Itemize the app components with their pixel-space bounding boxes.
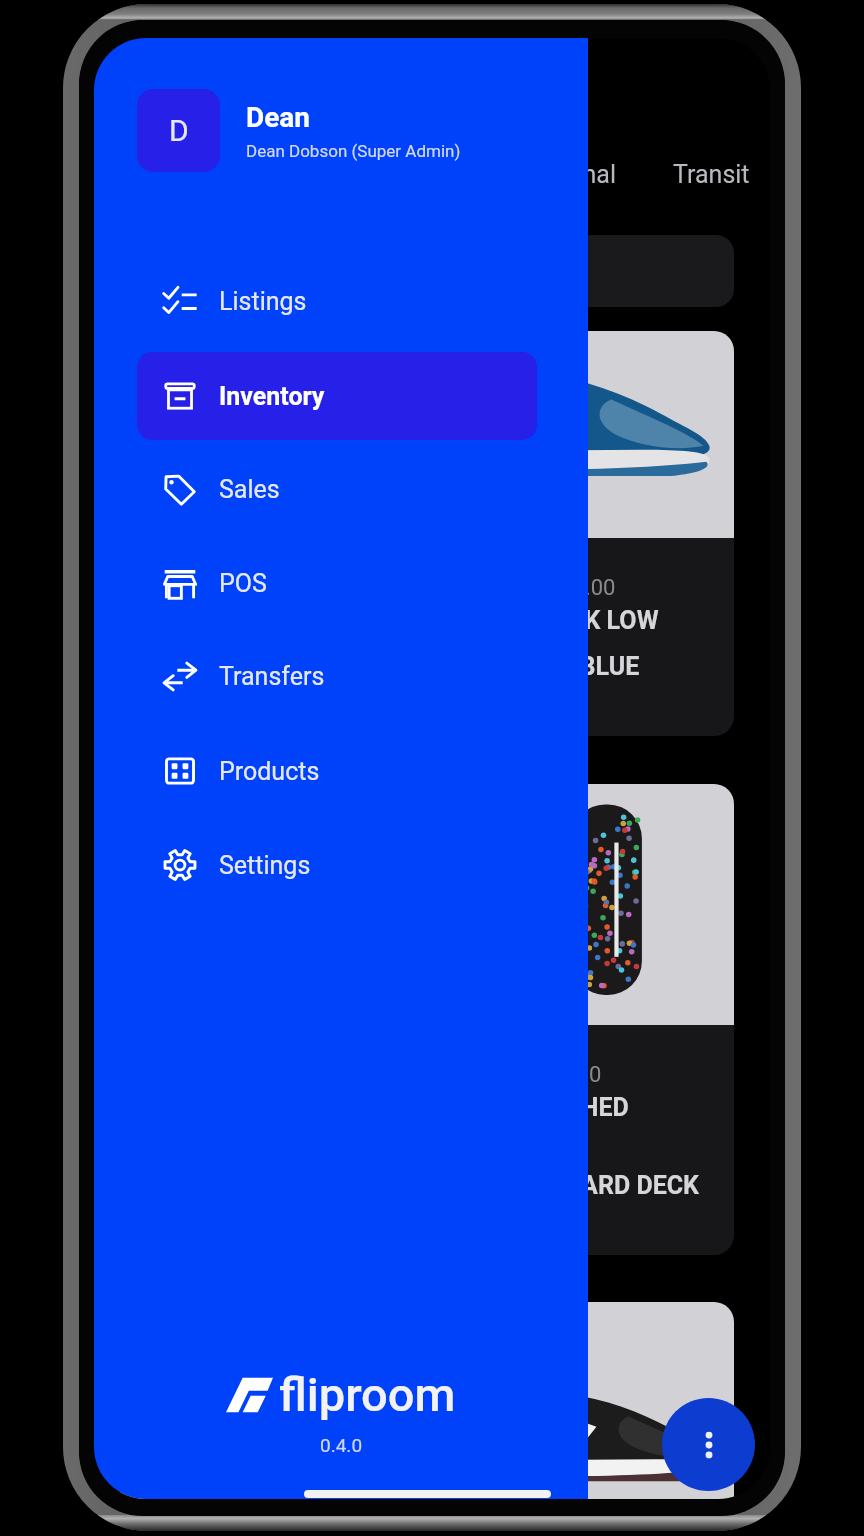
staticText: D	[169, 113, 189, 148]
button[interactable]: POS	[137, 539, 537, 627]
staticText: Dean	[246, 101, 311, 134]
staticText: fliproom	[279, 1367, 456, 1422]
staticText: Inventory	[219, 382, 325, 411]
button[interactable]: Settings	[137, 821, 537, 909]
staticText: Transit	[673, 160, 750, 189]
staticText: 0.4.0	[320, 1434, 363, 1456]
staticText: Dean Dobson (Super Admin)	[246, 141, 461, 161]
staticText: NIKE DUNK LOW	[473, 606, 659, 634]
button[interactable]: Personal	[497, 143, 637, 205]
staticText: Transfers	[219, 662, 325, 691]
button[interactable]: Transit	[652, 143, 770, 205]
button[interactable]	[120, 235, 734, 307]
button[interactable]: £185.00	[120, 331, 734, 736]
staticText: Products	[219, 757, 320, 786]
button[interactable]: More options	[662, 1398, 755, 1491]
button[interactable]: D	[137, 89, 545, 172]
button[interactable]: £125.00	[120, 1302, 734, 1499]
staticText: POS	[219, 569, 267, 598]
staticText: Listings	[219, 287, 307, 316]
staticText: SKATEBOARD DECK	[472, 1171, 699, 1199]
button[interactable]: Products	[137, 727, 537, 815]
staticText: Sales	[219, 475, 280, 504]
staticText: INDUSTRIAL BLUE	[431, 652, 640, 680]
button[interactable]: Transfers	[137, 632, 537, 720]
staticText: SUPREME SCRATCHED	[366, 1093, 629, 1121]
button[interactable]: Sales	[137, 445, 537, 533]
button[interactable]: Listings	[137, 257, 537, 345]
button[interactable]: Inventory	[137, 352, 537, 440]
button[interactable]: £210.00	[120, 784, 734, 1255]
staticText: £185.00	[535, 575, 616, 601]
staticText: Personal	[518, 160, 616, 189]
staticText: Settings	[219, 851, 311, 880]
staticText: £210.00	[521, 1062, 602, 1088]
